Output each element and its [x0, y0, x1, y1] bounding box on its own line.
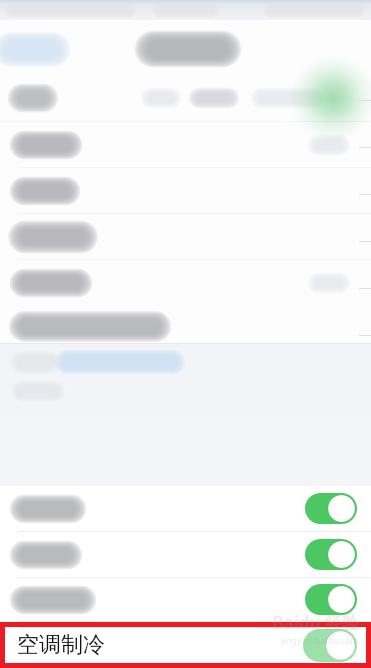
button[interactable]: Toggle on: [303, 629, 357, 662]
staticText: Baidu 经验: [272, 611, 359, 634]
button[interactable]: [0, 122, 371, 167]
button[interactable]: [0, 260, 371, 305]
staticText: jingyan.baidu.com: [281, 634, 359, 646]
button[interactable]: Toggle on: [305, 584, 357, 615]
button[interactable]: 空调制冷: [5, 627, 366, 663]
staticText: 空调制冷: [17, 631, 105, 659]
button[interactable]: [0, 214, 371, 259]
button[interactable]: [0, 168, 371, 213]
button[interactable]: Toggle on: [0, 532, 371, 577]
button[interactable]: Toggle on: [0, 578, 371, 621]
button[interactable]: Toggle on: [0, 486, 371, 531]
button[interactable]: Toggle on: [305, 539, 357, 570]
button[interactable]: Toggle on: [305, 493, 357, 524]
